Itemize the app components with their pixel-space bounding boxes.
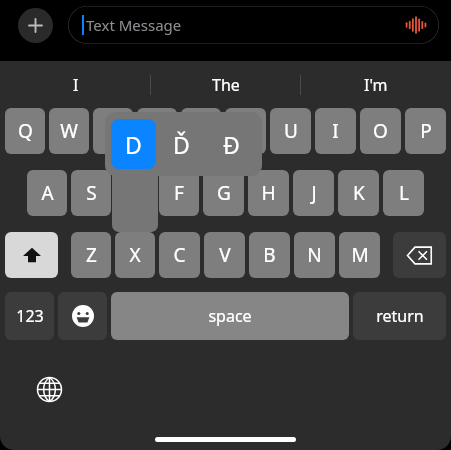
button[interactable]: H (248, 170, 289, 216)
staticText: Ď (173, 129, 190, 160)
button[interactable]: Shift (5, 232, 58, 278)
staticText: M (351, 242, 369, 268)
button[interactable]: I'm (301, 61, 451, 108)
button[interactable]: space (111, 292, 349, 340)
staticText: I (73, 74, 79, 96)
button[interactable]: Text Message (68, 6, 439, 44)
button[interactable]: Add attachment (18, 8, 53, 43)
button[interactable]: X (115, 232, 155, 278)
staticText: space (208, 305, 252, 327)
staticText: A (41, 180, 54, 206)
staticText: R (151, 118, 163, 144)
button[interactable]: Audio message (405, 16, 427, 34)
staticText: Đ (223, 129, 240, 160)
staticText: return (376, 305, 424, 327)
button[interactable]: The (151, 61, 301, 108)
button[interactable]: return (353, 292, 446, 340)
button[interactable]: Ď (156, 112, 206, 176)
staticText: L (399, 180, 409, 206)
staticText: Z (86, 242, 97, 268)
staticText: B (263, 242, 276, 268)
button[interactable]: Q (5, 108, 45, 154)
staticText: I'm (364, 74, 388, 96)
staticText: N (307, 242, 322, 268)
staticText: S (86, 180, 97, 206)
staticText: H (261, 180, 276, 206)
button[interactable]: S (71, 170, 111, 216)
staticText: Q (18, 118, 33, 144)
button[interactable]: Y (225, 108, 266, 154)
button[interactable]: B (249, 232, 290, 278)
staticText: 123 (16, 305, 44, 327)
button[interactable]: L (383, 170, 424, 216)
button[interactable]: Backspace (393, 232, 446, 278)
staticText: K (353, 180, 365, 206)
staticText: Text Message (86, 15, 182, 35)
staticText: J (311, 180, 317, 206)
button[interactable]: T (181, 108, 221, 154)
staticText: I (332, 118, 339, 144)
button[interactable]: D (111, 119, 156, 169)
staticText: The (212, 74, 240, 96)
button[interactable]: C (159, 232, 200, 278)
button[interactable]: V (204, 232, 245, 278)
button[interactable]: K (338, 170, 379, 216)
staticText: X (129, 242, 141, 268)
button[interactable]: Đ (206, 112, 256, 176)
button[interactable]: Emoji (58, 292, 107, 340)
button[interactable]: I (0, 61, 151, 108)
button[interactable]: 123 (5, 292, 54, 340)
staticText: V (219, 242, 231, 268)
button[interactable]: F (159, 170, 199, 216)
staticText: G (217, 180, 231, 206)
button[interactable]: W (49, 108, 89, 154)
staticText: W (60, 118, 78, 144)
button[interactable]: Z (71, 232, 111, 278)
staticText: F (174, 180, 184, 206)
button[interactable]: Change keyboard language (32, 372, 66, 406)
button[interactable]: P (405, 108, 446, 154)
staticText: O (373, 118, 388, 144)
staticText: D (125, 129, 142, 160)
staticText: C (173, 242, 186, 268)
button[interactable]: O (360, 108, 401, 154)
button[interactable]: E (93, 108, 133, 154)
button[interactable]: U (270, 108, 311, 154)
button[interactable]: I (315, 108, 356, 154)
staticText: P (420, 118, 432, 144)
staticText: U (284, 118, 298, 144)
button[interactable]: G (203, 170, 244, 216)
button[interactable]: R (137, 108, 177, 154)
button[interactable]: J (293, 170, 334, 216)
button[interactable]: A (27, 170, 67, 216)
button[interactable]: M (339, 232, 380, 278)
staticText: E (108, 118, 119, 144)
button[interactable]: N (294, 232, 335, 278)
